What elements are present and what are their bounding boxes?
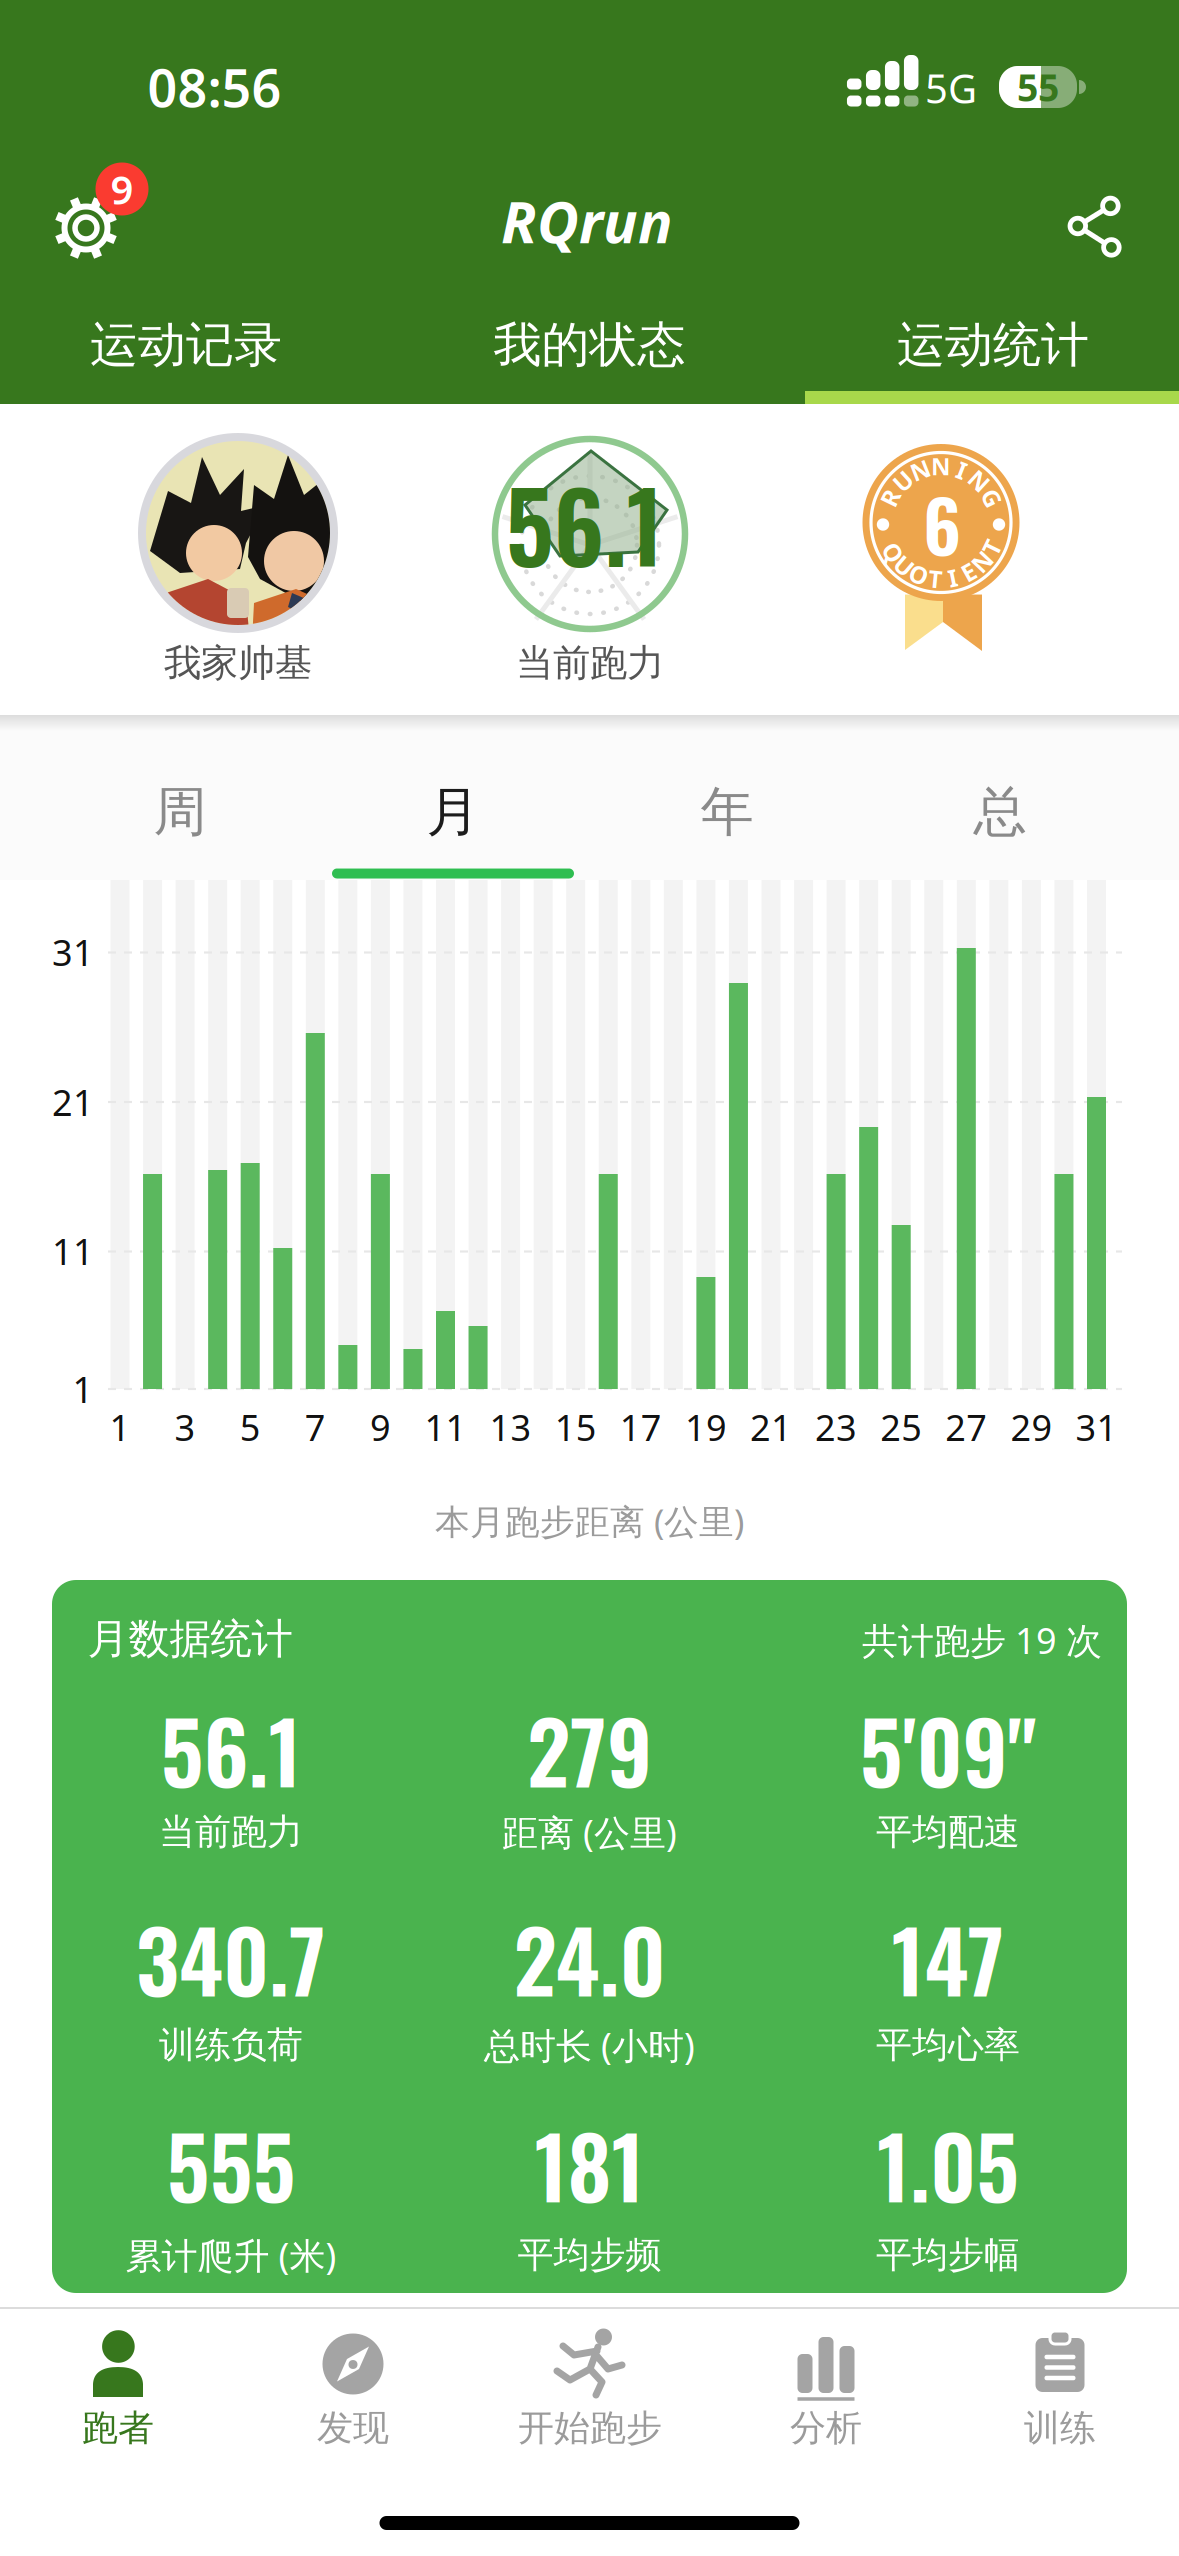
staticText: N [931, 450, 951, 482]
staticText: 平均步频 [517, 2233, 661, 2277]
button[interactable]: 月 [353, 757, 553, 867]
staticText: U [895, 549, 913, 581]
button[interactable]: 跑者 [3, 2311, 233, 2461]
staticText: 分析 [790, 2406, 862, 2450]
staticText: 31 [1075, 1403, 1117, 1451]
staticText: 11 [52, 1227, 94, 1275]
staticText: 周 [153, 779, 206, 845]
staticText: 跑者 [82, 2406, 154, 2450]
staticText: 当前跑力 [159, 1810, 303, 1854]
staticText: 6 [923, 470, 961, 577]
staticText: 11 [424, 1403, 466, 1451]
staticText: 年 [700, 779, 753, 845]
staticText: I [957, 454, 966, 486]
staticText: 运动记录 [90, 315, 282, 374]
staticText: 31 [52, 928, 94, 976]
staticText: 我的状态 [493, 315, 685, 374]
button[interactable]: 我的状态 [393, 290, 786, 400]
staticText: 我家帅基 [164, 640, 312, 686]
staticText: 27 [945, 1403, 987, 1451]
staticText: 19 [685, 1403, 727, 1451]
button[interactable]: 周 [80, 757, 280, 867]
staticText: O [909, 558, 928, 590]
staticText: 总时长 (小时) [484, 2021, 695, 2069]
staticText: 5 [240, 1403, 261, 1451]
staticText: T [928, 563, 942, 595]
staticText: 555 [166, 2101, 295, 2227]
staticText: 9 [110, 162, 133, 215]
staticText: 距离 (公里) [502, 1808, 677, 1856]
staticText: 9 [370, 1403, 391, 1451]
staticText: N [969, 465, 989, 497]
staticText: I [948, 562, 957, 594]
staticText: Q [884, 536, 903, 568]
staticText: 1.05 [877, 2101, 1019, 2227]
staticText: 56.1 [505, 452, 663, 595]
staticText: 开始跑步 [518, 2406, 662, 2450]
staticText: N [972, 545, 992, 577]
staticText: 总 [973, 779, 1026, 845]
staticText: 1 [109, 1403, 130, 1451]
staticText: 平均配速 [876, 1810, 1020, 1854]
button[interactable]: 分享 [1039, 171, 1149, 281]
staticText: 29 [1010, 1403, 1052, 1451]
staticText: 运动统计 [897, 315, 1089, 374]
button[interactable]: 年 [627, 757, 827, 867]
staticText: 340.7 [136, 1895, 326, 2021]
staticText: 23 [815, 1403, 857, 1451]
staticText: 279 [527, 1686, 652, 1812]
staticText: 7 [305, 1403, 326, 1451]
staticText: R [882, 482, 898, 514]
button[interactable]: 设置 [40, 146, 170, 276]
staticText: 17 [620, 1403, 662, 1451]
staticText: 本月跑步距离 (公里) [435, 1498, 744, 1544]
staticText: 56.1 [160, 1686, 301, 1812]
staticText: T [985, 531, 999, 563]
staticText: 15 [555, 1403, 597, 1451]
staticText: 平均步幅 [876, 2233, 1020, 2277]
staticText: 1 [72, 1365, 93, 1413]
staticText: 55 [1017, 62, 1059, 112]
staticText: G [983, 482, 1000, 514]
button[interactable]: 开始跑步 [475, 2311, 705, 2461]
staticText: 3 [175, 1403, 196, 1451]
staticText: 147 [891, 1895, 1004, 2021]
staticText: 5'09" [859, 1686, 1036, 1812]
staticText: RQrun [501, 183, 673, 259]
staticText: 训练负荷 [159, 2023, 303, 2067]
button[interactable]: 运动记录 [0, 290, 382, 400]
staticText: 共计跑步 19 次 [862, 1616, 1102, 1664]
staticText: U [894, 465, 912, 497]
button[interactable]: 分析 [711, 2311, 941, 2461]
staticText: 发现 [317, 2406, 389, 2450]
staticText: 累计爬升 (米) [125, 2231, 336, 2279]
button[interactable]: 发现 [238, 2311, 468, 2461]
staticText: N [910, 454, 930, 486]
button[interactable]: 运动统计 [796, 290, 1179, 400]
staticText: 当前跑力 [516, 640, 664, 686]
staticText: 月数据统计 [87, 1614, 292, 1664]
staticText: 13 [490, 1403, 532, 1451]
staticText: 训练 [1024, 2406, 1096, 2450]
staticText: E [962, 556, 975, 588]
staticText: 25 [880, 1403, 922, 1451]
staticText: 平均心率 [876, 2023, 1020, 2067]
staticText: 181 [534, 2101, 644, 2227]
staticText: 24.0 [513, 1895, 665, 2021]
button[interactable]: 总 [900, 757, 1100, 867]
staticText: 5G [925, 61, 977, 114]
button[interactable]: 训练 [945, 2311, 1175, 2461]
button[interactable]: 我家帅基 [138, 433, 338, 633]
staticText: 08:56 [147, 52, 281, 122]
staticText: 月 [426, 779, 479, 845]
staticText: 21 [52, 1078, 94, 1126]
staticText: 21 [750, 1403, 792, 1451]
